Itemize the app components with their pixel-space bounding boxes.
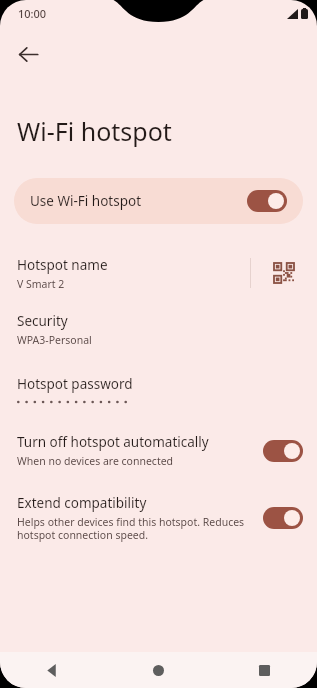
button[interactable]: Security <box>0 306 317 353</box>
staticText: Use Wi-Fi hotspot <box>30 192 247 210</box>
button[interactable]: Extend compatibility <box>0 490 317 546</box>
button[interactable]: Home <box>105 652 211 688</box>
button[interactable]: Recent apps <box>211 652 317 688</box>
button[interactable]: Toggle <box>247 190 287 212</box>
button[interactable]: Toggle <box>263 440 303 462</box>
staticText: Security <box>17 312 68 330</box>
button[interactable]: Back <box>0 652 105 688</box>
staticText: Wi-Fi hotspot <box>17 114 172 148</box>
staticText: WPA3-Personal <box>17 333 92 347</box>
staticText: Turn off hotspot automatically <box>17 433 209 451</box>
staticText: When no devices are connected <box>17 454 174 468</box>
staticText: Hotspot name <box>17 256 108 274</box>
button[interactable]: Share hotspot QR code <box>251 246 317 300</box>
staticText: Hotspot password <box>17 375 133 393</box>
button[interactable]: Toggle <box>263 507 303 529</box>
staticText: Extend compatibility <box>17 494 147 512</box>
staticText: V Smart 2 <box>17 277 65 291</box>
button[interactable]: Hotspot name <box>0 246 250 300</box>
button[interactable]: Hotspot password <box>0 371 317 411</box>
staticText: Helps other devices find this hotspot. R… <box>17 515 245 542</box>
button[interactable]: Turn off hotspot automatically <box>0 429 317 472</box>
button[interactable]: Use Wi-Fi hotspot <box>14 178 303 224</box>
button[interactable]: Back <box>6 32 50 76</box>
staticText: 10:00 <box>18 6 47 21</box>
